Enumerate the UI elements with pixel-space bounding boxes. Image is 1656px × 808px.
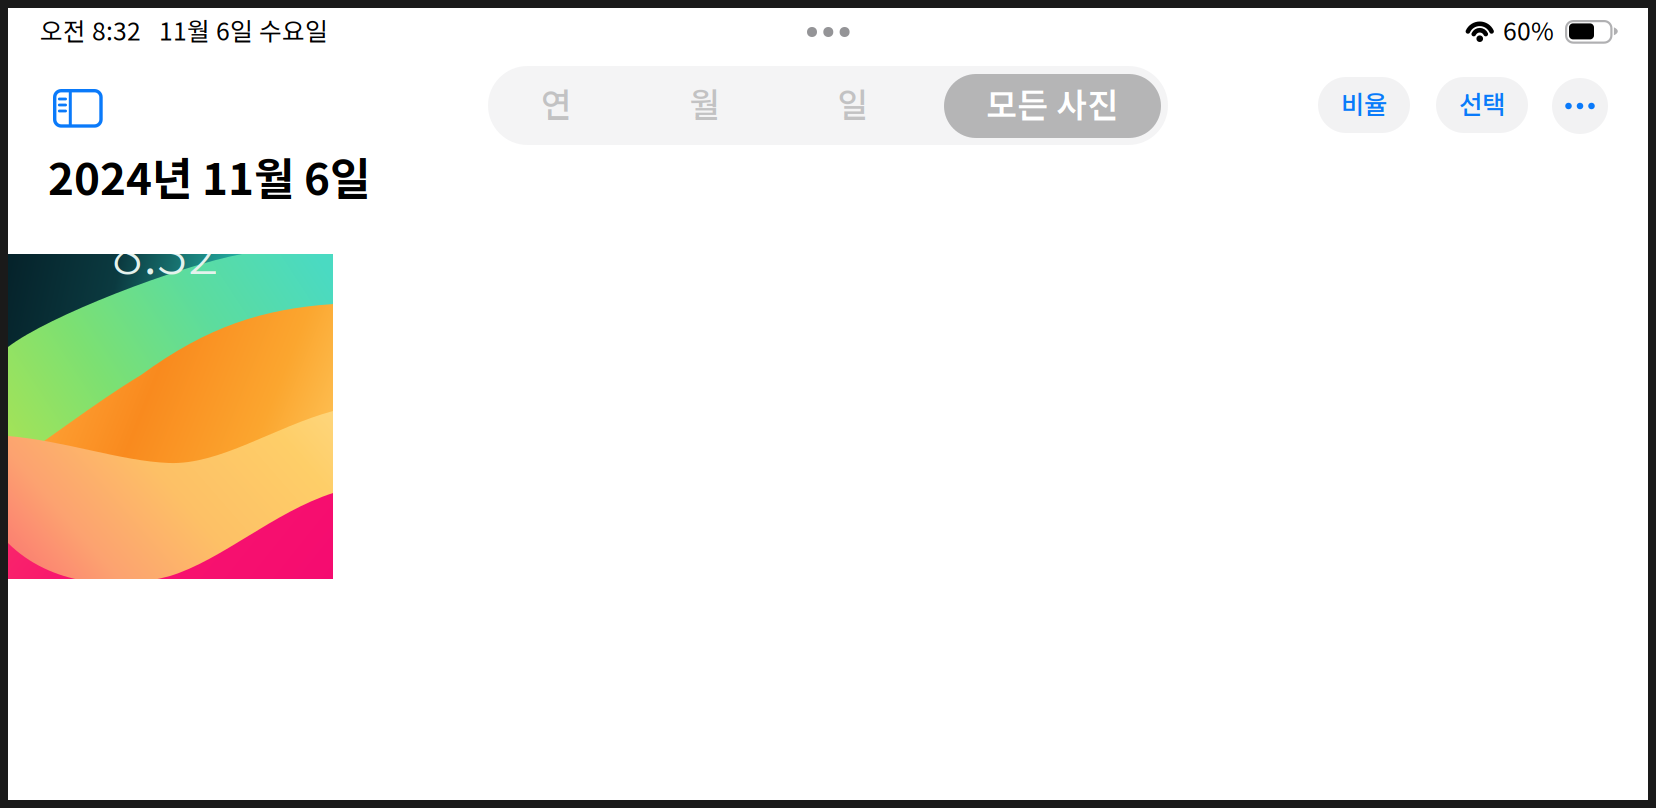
button[interactable]: 선택 [1436, 77, 1528, 133]
button[interactable]: 연 [482, 66, 630, 145]
button[interactable]: 월 [631, 66, 779, 145]
staticText: 일 [837, 78, 868, 127]
button[interactable]: 사진 [8, 254, 333, 579]
staticText: 2024년 11월 6일 [48, 144, 370, 208]
button[interactable]: 모든 사진 [944, 74, 1161, 138]
staticText: 선택 [1459, 85, 1505, 121]
button[interactable]: 사이드바 [43, 79, 113, 138]
button[interactable]: 더 보기 [1552, 78, 1608, 134]
button[interactable]: 비율 [1318, 77, 1410, 133]
staticText: 연 [541, 78, 572, 127]
button[interactable]: 일 [779, 66, 927, 145]
staticText: 60% [1503, 12, 1554, 48]
staticText: 비율 [1341, 85, 1387, 121]
staticText: 8:32 [112, 207, 219, 290]
staticText: 오전 8:32 11월 6일 수요일 [40, 12, 328, 48]
staticText: 월 [689, 78, 720, 127]
staticText: 모든 사진 [986, 79, 1118, 127]
